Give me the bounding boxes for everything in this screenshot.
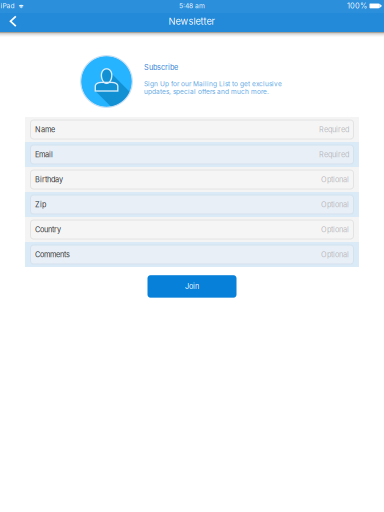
staticText: Sign Up for our Mailing List to get excl…: [144, 80, 282, 96]
staticText: 5:48 am: [179, 2, 205, 10]
staticText: Comments: [35, 250, 70, 259]
button[interactable]: Comments: [25, 242, 359, 267]
staticText: Birthday: [35, 175, 63, 184]
staticText: Country: [35, 225, 61, 234]
staticText: 100%: [347, 1, 367, 10]
button[interactable]: Name: [25, 117, 359, 142]
staticText: Optional: [321, 175, 349, 184]
staticText: Zip: [35, 200, 46, 209]
button[interactable]: Back: [0, 13, 26, 32]
staticText: Name: [35, 125, 55, 134]
staticText: Required: [319, 125, 349, 134]
staticText: Email: [35, 150, 53, 159]
button[interactable]: Birthday: [25, 167, 359, 192]
button[interactable]: Country: [25, 217, 359, 242]
button[interactable]: Zip: [25, 192, 359, 217]
staticText: Required: [319, 150, 349, 159]
staticText: Subscribe: [144, 63, 178, 72]
staticText: iPad: [0, 2, 14, 10]
staticText: Optional: [321, 200, 349, 209]
staticText: Join: [185, 282, 199, 291]
staticText: Newsletter: [168, 16, 215, 27]
button[interactable]: Email: [25, 142, 359, 167]
staticText: Optional: [321, 250, 349, 259]
staticText: Optional: [321, 225, 349, 234]
button[interactable]: Join: [147, 275, 236, 298]
